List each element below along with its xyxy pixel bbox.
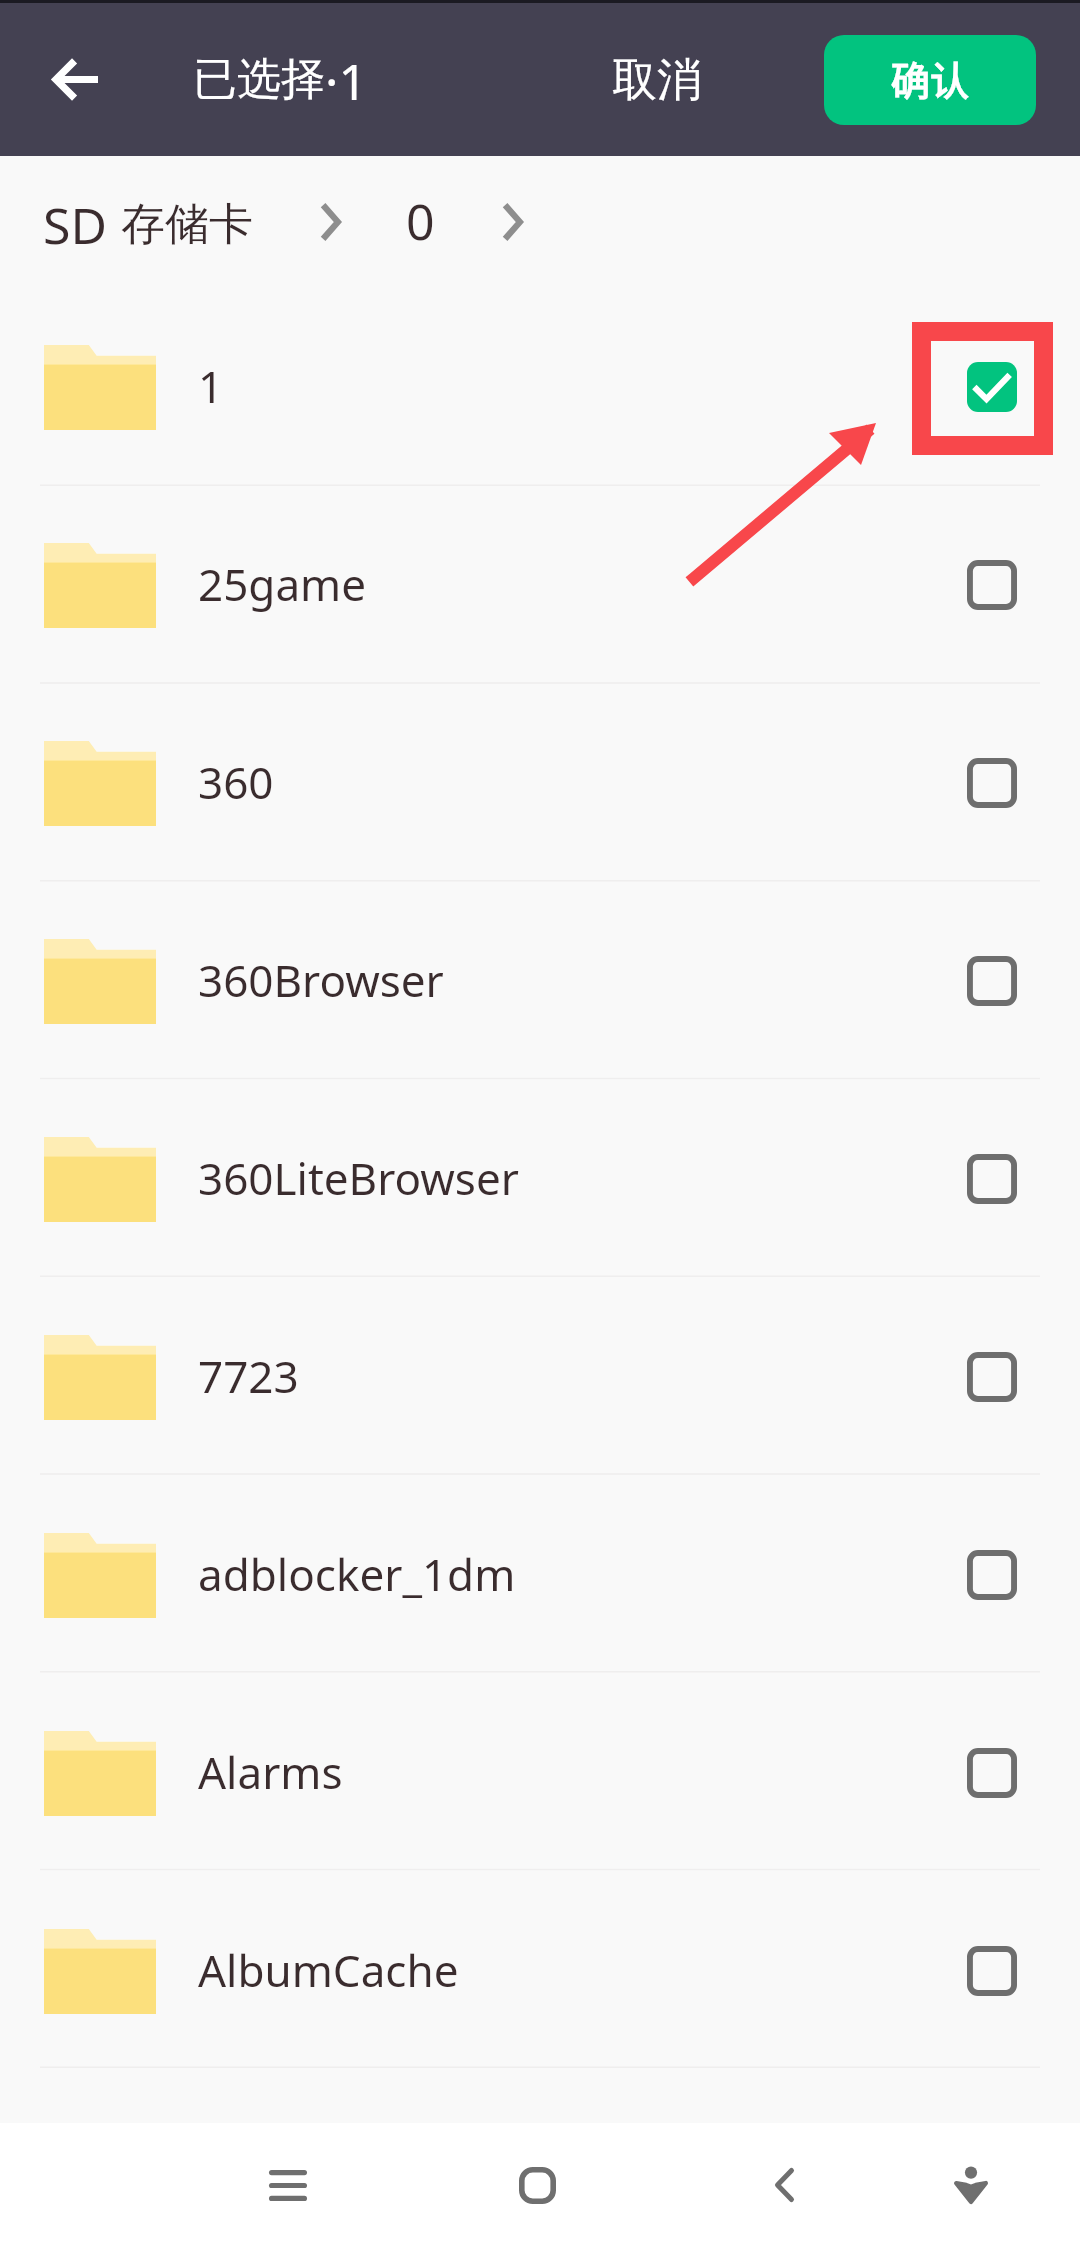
staticText: 存储卡: [121, 197, 253, 252]
button[interactable]: Profile: [891, 2123, 1051, 2253]
button[interactable]: Back: [704, 2123, 864, 2253]
staticText: 已选择: [193, 52, 325, 107]
staticText: AlbumCache: [198, 1940, 459, 2000]
button[interactable]: adblocker_1dm: [0, 1476, 1080, 1674]
button[interactable]: Not selected: [922, 882, 1062, 1080]
staticText: 1: [198, 356, 224, 416]
button[interactable]: Not selected: [922, 1872, 1062, 2070]
staticText: Alarms: [198, 1742, 343, 1802]
button[interactable]: 360LiteBrowser: [0, 1080, 1080, 1278]
staticText: 360Browser: [198, 950, 444, 1010]
button[interactable]: AlbumCache: [0, 1872, 1080, 2070]
button[interactable]: 确认: [824, 35, 1036, 125]
button[interactable]: Not selected: [922, 1278, 1062, 1476]
button[interactable]: Selected: [922, 288, 1062, 486]
staticText: 0: [406, 187, 435, 255]
staticText: SD: [43, 191, 107, 259]
button[interactable]: 25game: [0, 486, 1080, 684]
button[interactable]: Not selected: [922, 684, 1062, 882]
button[interactable]: SD: [43, 156, 253, 288]
button[interactable]: Alarms: [0, 1674, 1080, 1872]
staticText: 取消: [612, 52, 702, 109]
button[interactable]: 360: [0, 684, 1080, 882]
staticText: adblocker_1dm: [198, 1544, 516, 1604]
button[interactable]: Menu: [208, 2123, 368, 2253]
button[interactable]: 1: [0, 288, 1080, 486]
button[interactable]: 取消: [590, 3, 720, 156]
staticText: 7723: [198, 1346, 299, 1406]
button[interactable]: Back: [0, 3, 150, 156]
staticText: ·1: [325, 47, 367, 115]
button[interactable]: Not selected: [922, 1674, 1062, 1872]
button[interactable]: 7723: [0, 1278, 1080, 1476]
staticText: 25game: [198, 554, 367, 614]
button[interactable]: Not selected: [922, 1476, 1062, 1674]
button[interactable]: 360Browser: [0, 882, 1080, 1080]
button[interactable]: Not selected: [922, 1080, 1062, 1278]
button[interactable]: 0: [406, 156, 435, 288]
staticText: 360LiteBrowser: [198, 1148, 519, 1208]
staticText: 360: [198, 752, 274, 812]
staticText: 确认: [891, 50, 970, 106]
button[interactable]: Home: [457, 2123, 617, 2253]
button[interactable]: Not selected: [922, 486, 1062, 684]
